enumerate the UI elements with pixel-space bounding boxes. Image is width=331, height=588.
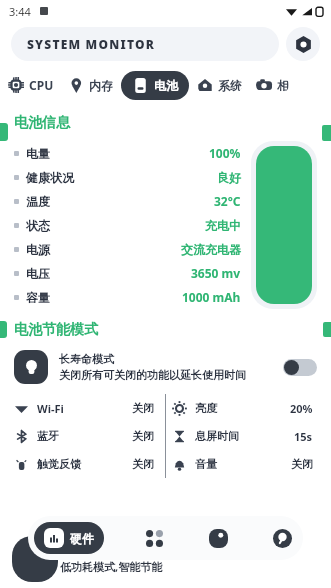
staticText: 触觉反馈 (37, 457, 81, 471)
staticText: 15s (294, 429, 313, 444)
staticText: 32°C (214, 193, 241, 209)
staticText: 关闭 (132, 429, 154, 443)
button[interactable]: 系统 (197, 77, 242, 93)
button[interactable]: 音量 (172, 450, 317, 478)
button[interactable]: 蓝牙 (14, 422, 158, 450)
button[interactable]: 硬件 (34, 522, 104, 554)
button[interactable]: 健康状况 (14, 165, 241, 189)
staticText: 电池 (154, 78, 178, 93)
staticText: 电压 (26, 266, 50, 281)
button[interactable]: SYSTEM MONITOR (11, 27, 279, 61)
button[interactable]: 长寿命模式 (14, 350, 317, 384)
staticText: 关闭 (291, 457, 313, 471)
button[interactable]: 电量 (14, 141, 241, 165)
button[interactable]: 温度 (14, 189, 241, 213)
staticText: 容量 (26, 290, 50, 305)
button[interactable]: 相 (256, 77, 289, 93)
staticText: 关闭所有可关闭的功能以延长使用时间 (59, 368, 246, 382)
staticText: 1000 mAh (182, 289, 241, 305)
staticText: 关闭 (132, 401, 154, 415)
staticText: 充电中 (205, 218, 241, 233)
staticText: 音量 (195, 457, 217, 471)
staticText: 电池节能模式 (14, 321, 98, 339)
staticText: 交流充电器 (181, 242, 241, 257)
staticText: 100% (209, 145, 241, 161)
button[interactable]: 容量 (14, 285, 241, 309)
staticText: 长寿命模式 (59, 352, 114, 366)
button[interactable]: 应用 (139, 523, 169, 553)
staticText: 电源 (26, 242, 50, 257)
button[interactable]: 息屏时间 (172, 422, 317, 450)
button[interactable]: 触觉反馈 (14, 450, 158, 478)
staticText: 电量 (26, 146, 50, 161)
button[interactable]: 电源 (14, 237, 241, 261)
staticText: Wi-Fi (37, 401, 64, 416)
staticText: 低功耗模式,智能节能 (60, 559, 163, 574)
staticText: CPU (29, 77, 54, 93)
button[interactable]: 状态 (14, 213, 241, 237)
staticText: 20% (290, 401, 313, 416)
button[interactable]: Settings (286, 27, 320, 61)
button[interactable]: 电压 (14, 261, 241, 285)
button[interactable]: CPU (8, 77, 54, 93)
button[interactable]: 亮度 (172, 394, 317, 422)
staticText: SYSTEM MONITOR (27, 36, 156, 52)
staticText: 亮度 (195, 401, 217, 415)
button[interactable]: Wi-Fi (14, 394, 158, 422)
button[interactable]: 长寿命模式开关 (283, 359, 317, 376)
staticText: 系统 (218, 78, 242, 93)
staticText: 息屏时间 (195, 429, 239, 443)
staticText: 状态 (26, 218, 50, 233)
staticText: 关闭 (132, 457, 154, 471)
staticText: 良好 (217, 170, 241, 185)
button[interactable]: 工具 (267, 523, 297, 553)
staticText: 3650 mv (191, 265, 241, 281)
staticText: 蓝牙 (37, 429, 59, 443)
button[interactable]: 内存 (68, 77, 113, 93)
staticText: 温度 (26, 194, 50, 209)
staticText: 健康状况 (26, 170, 74, 185)
staticText: 电池信息 (14, 114, 70, 132)
staticText: 内存 (89, 78, 113, 93)
staticText: 硬件 (70, 531, 94, 546)
button[interactable]: 电池 (203, 523, 233, 553)
staticText: 相 (277, 78, 289, 93)
staticText: 3:44 (9, 4, 31, 19)
button[interactable]: 电池 (121, 71, 189, 100)
